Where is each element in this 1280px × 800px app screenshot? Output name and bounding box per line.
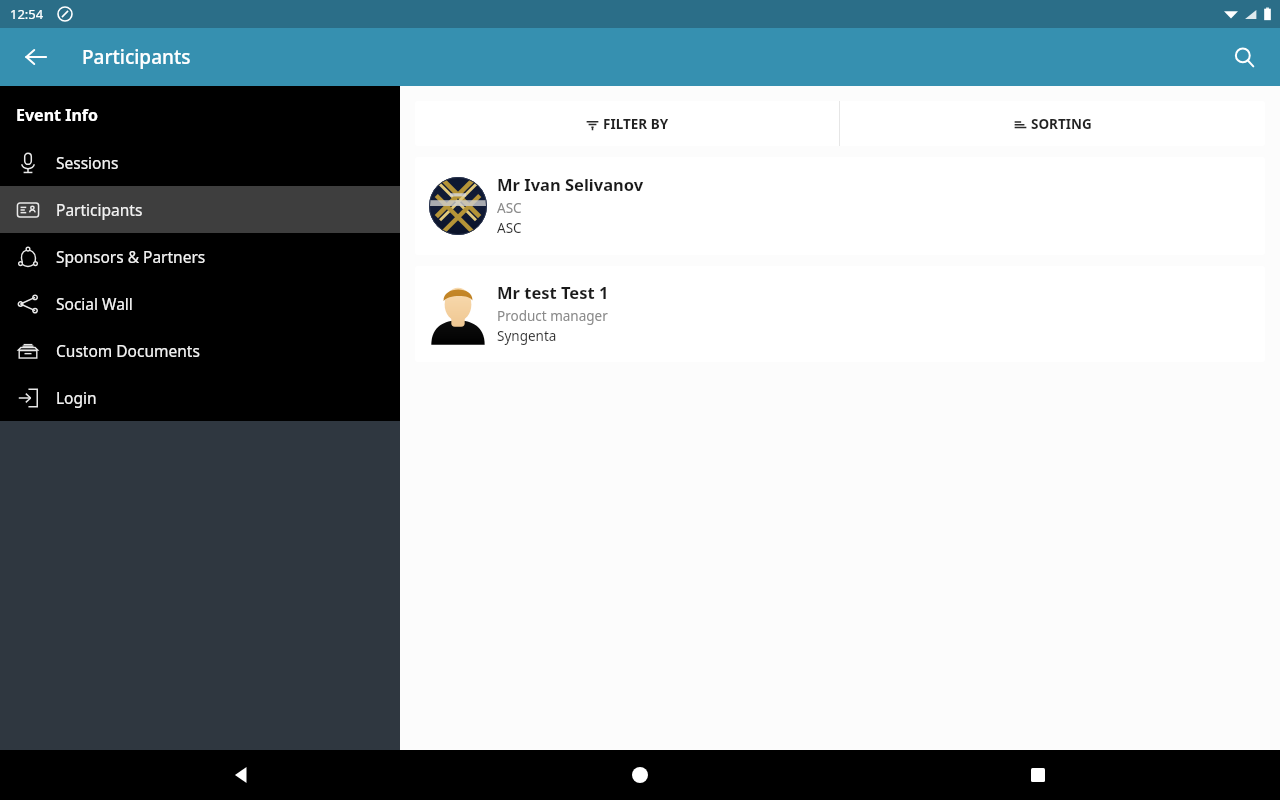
button[interactable]: Custom Documents [0,327,400,374]
button[interactable]: Recent apps [1008,750,1068,800]
staticText: Mr Ivan Selivanov [497,173,644,195]
staticText: Participants [56,199,143,220]
button[interactable]: Home [610,750,670,800]
button[interactable]: SORTING [840,101,1265,146]
staticText: Sponsors & Partners [56,246,206,267]
staticText: Mr test Test 1 [497,281,609,303]
button[interactable]: Social Wall [0,280,400,327]
button[interactable]: Back [212,750,272,800]
staticText: Login [56,387,97,408]
staticText: Sessions [56,152,119,173]
button[interactable]: Participants [0,186,400,233]
button[interactable]: Search [1220,33,1268,81]
staticText: Syngenta [497,327,557,345]
staticText: Custom Documents [56,340,200,361]
staticText: Event Info [16,104,98,126]
staticText: ASC [497,219,522,237]
staticText: 12:54 [10,5,44,23]
button[interactable]: Mr Ivan Selivanov [415,157,1265,255]
staticText: SORTING [1031,115,1092,133]
button[interactable]: Sponsors & Partners [0,233,400,280]
staticText: Social Wall [56,293,133,314]
button[interactable]: Login [0,374,400,421]
staticText: ASC [497,199,522,217]
button[interactable]: Mr test Test 1 [415,266,1265,362]
button[interactable]: Back [12,33,60,81]
staticText: Product manager [497,307,608,325]
button[interactable]: FILTER BY [415,101,839,146]
button[interactable]: Sessions [0,139,400,186]
staticText: Participants [82,44,191,70]
staticText: FILTER BY [603,115,669,133]
